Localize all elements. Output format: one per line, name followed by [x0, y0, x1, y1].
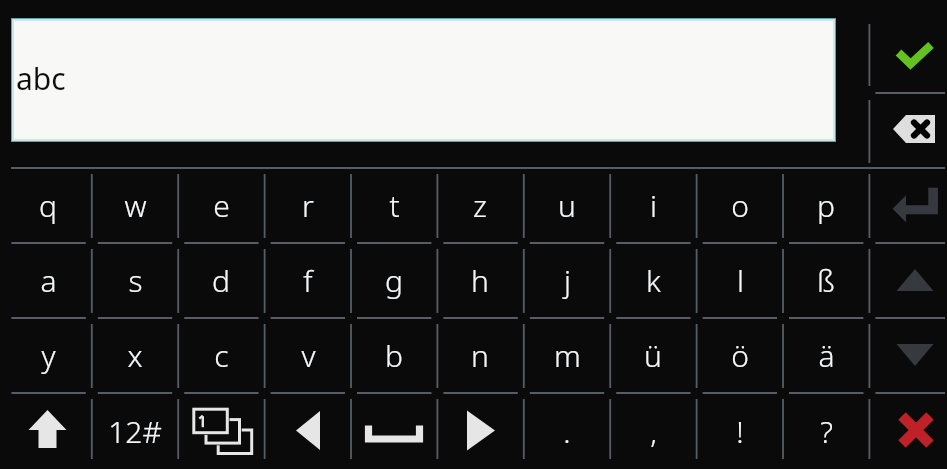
button[interactable]: a: [5, 243, 91, 318]
staticText: q: [39, 185, 57, 226]
button[interactable]: d: [178, 243, 264, 318]
staticText: ,: [650, 411, 657, 452]
button[interactable]: ?: [783, 393, 869, 469]
button[interactable]: Enter: [869, 168, 947, 243]
button[interactable]: Space: [351, 393, 437, 469]
button[interactable]: i: [610, 168, 696, 243]
staticText: ß: [817, 260, 835, 301]
button[interactable]: c: [178, 318, 264, 393]
button[interactable]: m: [524, 318, 610, 393]
button[interactable]: v: [265, 318, 351, 393]
staticText: l: [737, 260, 744, 301]
staticText: ?: [820, 411, 833, 452]
button[interactable]: q: [5, 168, 91, 243]
button[interactable]: Shift: [5, 393, 91, 469]
button[interactable]: !: [697, 393, 783, 469]
button[interactable]: Switch keyboard: [178, 393, 264, 469]
button[interactable]: e: [178, 168, 264, 243]
staticText: ö: [731, 335, 749, 376]
button[interactable]: p: [783, 168, 869, 243]
staticText: abc: [16, 58, 66, 99]
staticText: j: [564, 260, 571, 301]
staticText: i: [650, 185, 657, 226]
staticText: z: [473, 185, 487, 226]
button[interactable]: b: [351, 318, 437, 393]
button[interactable]: f: [265, 243, 351, 318]
button[interactable]: x: [92, 318, 178, 393]
staticText: e: [213, 185, 230, 226]
button[interactable]: o: [697, 168, 783, 243]
staticText: u: [558, 185, 576, 226]
staticText: n: [471, 335, 489, 376]
staticText: m: [554, 335, 581, 376]
button[interactable]: z: [437, 168, 523, 243]
button[interactable]: g: [351, 243, 437, 318]
button[interactable]: Accept: [869, 0, 947, 93]
button[interactable]: n: [437, 318, 523, 393]
button[interactable]: ü: [610, 318, 696, 393]
staticText: h: [471, 260, 489, 301]
staticText: p: [817, 185, 835, 226]
button[interactable]: l: [697, 243, 783, 318]
staticText: y: [41, 335, 56, 376]
button[interactable]: Up: [869, 243, 947, 318]
button[interactable]: y: [5, 318, 91, 393]
button[interactable]: 12#: [92, 393, 178, 469]
staticText: w: [124, 185, 147, 226]
button[interactable]: ß: [783, 243, 869, 318]
button[interactable]: Left: [265, 393, 351, 469]
button[interactable]: h: [437, 243, 523, 318]
button[interactable]: Cancel: [869, 393, 947, 469]
button[interactable]: u: [524, 168, 610, 243]
button[interactable]: Right: [437, 393, 523, 469]
button[interactable]: k: [610, 243, 696, 318]
staticText: b: [385, 335, 403, 376]
button[interactable]: .: [524, 393, 610, 469]
staticText: v: [301, 335, 316, 376]
staticText: x: [127, 335, 143, 376]
staticText: f: [303, 260, 313, 301]
button[interactable]: j: [524, 243, 610, 318]
button[interactable]: Down: [869, 318, 947, 393]
button[interactable]: s: [92, 243, 178, 318]
button[interactable]: ö: [697, 318, 783, 393]
staticText: r: [302, 185, 314, 226]
button[interactable]: w: [92, 168, 178, 243]
staticText: o: [731, 185, 749, 226]
staticText: !: [736, 411, 744, 452]
staticText: ü: [644, 335, 662, 376]
staticText: c: [214, 335, 229, 376]
staticText: 12#: [108, 411, 162, 452]
button[interactable]: Backspace: [869, 93, 947, 168]
staticText: .: [563, 411, 571, 452]
staticText: s: [128, 260, 143, 301]
button[interactable]: t: [351, 168, 437, 243]
button[interactable]: r: [265, 168, 351, 243]
button[interactable]: ä: [783, 318, 869, 393]
staticText: g: [385, 260, 403, 301]
staticText: t: [389, 185, 400, 226]
staticText: d: [212, 260, 230, 301]
staticText: k: [646, 260, 661, 301]
button[interactable]: ,: [610, 393, 696, 469]
button[interactable]: abc: [14, 21, 833, 139]
staticText: ä: [818, 335, 835, 376]
staticText: a: [40, 260, 57, 301]
